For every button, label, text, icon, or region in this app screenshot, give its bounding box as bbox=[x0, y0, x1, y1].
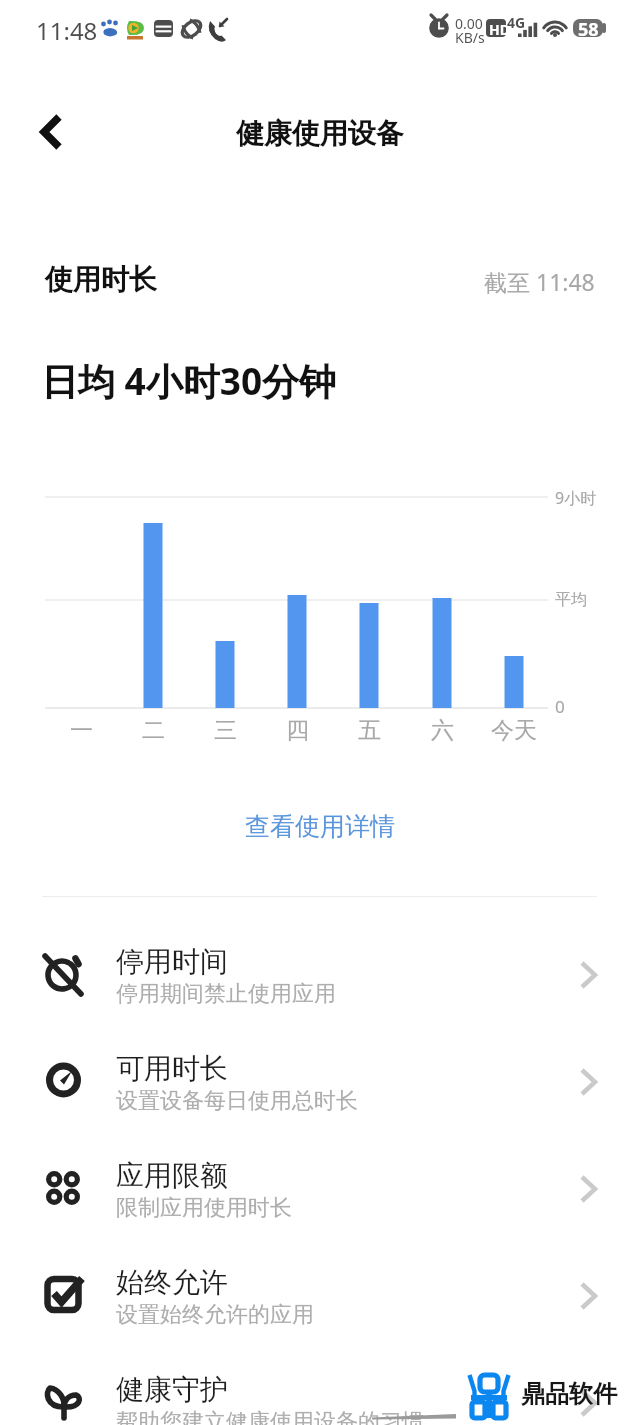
button[interactable]: 应用限额 bbox=[0, 1152, 640, 1259]
button[interactable]: 停用时间 bbox=[0, 938, 640, 1045]
staticText: 查看使用详情 bbox=[245, 811, 395, 842]
staticText: 健康使用设备 bbox=[236, 116, 404, 151]
staticText: 二 bbox=[142, 716, 165, 745]
staticText: 六 bbox=[431, 716, 454, 745]
button[interactable]: 健康守护 bbox=[0, 1366, 640, 1425]
staticText: 截至 11:48 bbox=[484, 266, 595, 297]
staticText: 五 bbox=[358, 716, 381, 745]
staticText: 日均 4小时30分钟 bbox=[41, 355, 337, 406]
staticText: 平均 bbox=[555, 590, 587, 610]
staticText: 今天 bbox=[491, 716, 537, 745]
staticText: 0 bbox=[555, 695, 565, 718]
staticText: KB/s bbox=[455, 28, 485, 47]
staticText: 0.00 bbox=[455, 14, 483, 33]
staticText: 使用时长 bbox=[45, 262, 157, 297]
staticText: HD bbox=[489, 20, 510, 39]
staticText: 4G bbox=[507, 13, 526, 32]
staticText: 应用限额 bbox=[116, 1158, 228, 1193]
staticText: 一 bbox=[70, 716, 93, 745]
staticText: 停用时间 bbox=[116, 944, 228, 979]
staticText: 停用期间禁止使用应用 bbox=[116, 980, 336, 1008]
staticText: 帮助您建立健康使用设备的习惯 bbox=[116, 1408, 424, 1425]
staticText: 限制应用使用时长 bbox=[116, 1194, 292, 1222]
staticText: 鼎品软件 bbox=[521, 1379, 617, 1409]
staticText: 设置始终允许的应用 bbox=[116, 1301, 314, 1329]
staticText: 三 bbox=[214, 716, 237, 745]
staticText: 可用时长 bbox=[116, 1051, 228, 1086]
staticText: 11:48 bbox=[36, 14, 98, 47]
staticText: 9小时 bbox=[555, 487, 597, 509]
button[interactable]: Back bbox=[20, 100, 84, 164]
button[interactable]: 始终允许 bbox=[0, 1259, 640, 1366]
staticText: 设置设备每日使用总时长 bbox=[116, 1087, 358, 1115]
staticText: 健康守护 bbox=[116, 1372, 228, 1407]
staticText: 始终允许 bbox=[116, 1265, 228, 1300]
staticText: 四 bbox=[286, 716, 309, 745]
button[interactable]: 可用时长 bbox=[0, 1045, 640, 1152]
button[interactable]: 查看使用详情 bbox=[221, 803, 419, 850]
staticText: 58 bbox=[578, 17, 599, 42]
